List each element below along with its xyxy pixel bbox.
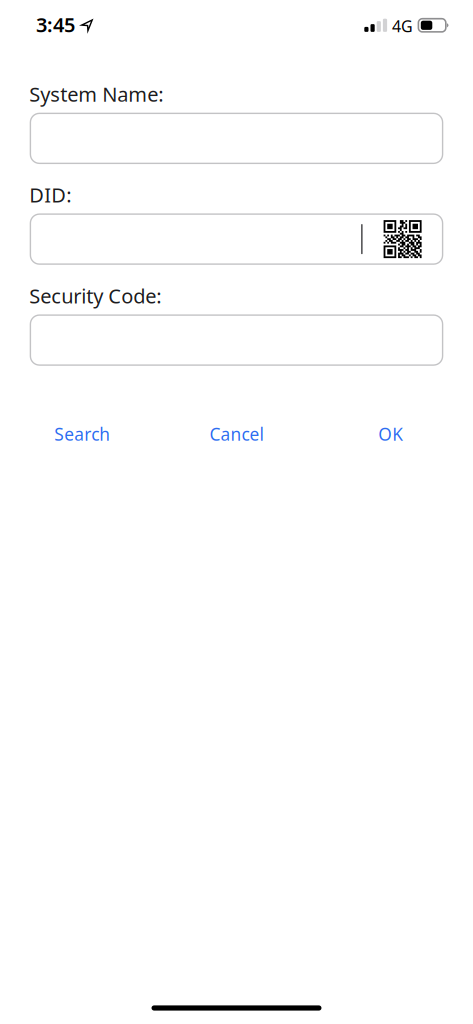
button[interactable]: DID	[30, 214, 443, 264]
staticText: Security Code:	[29, 282, 161, 309]
button[interactable]: Scan QR code	[363, 215, 443, 263]
staticText: System Name:	[29, 81, 163, 107]
staticText: Cancel	[209, 423, 263, 446]
staticText: OK	[378, 423, 403, 446]
button[interactable]: Security Code	[30, 315, 443, 365]
button[interactable]: OK	[314, 417, 468, 451]
staticText: 4G	[392, 15, 413, 37]
button[interactable]: Search	[5, 417, 159, 451]
staticText: DID:	[29, 182, 71, 208]
button[interactable]: System Name	[30, 113, 443, 163]
staticText: Search	[54, 423, 110, 446]
staticText: 3:45	[36, 11, 75, 38]
button[interactable]: Cancel	[159, 417, 314, 451]
